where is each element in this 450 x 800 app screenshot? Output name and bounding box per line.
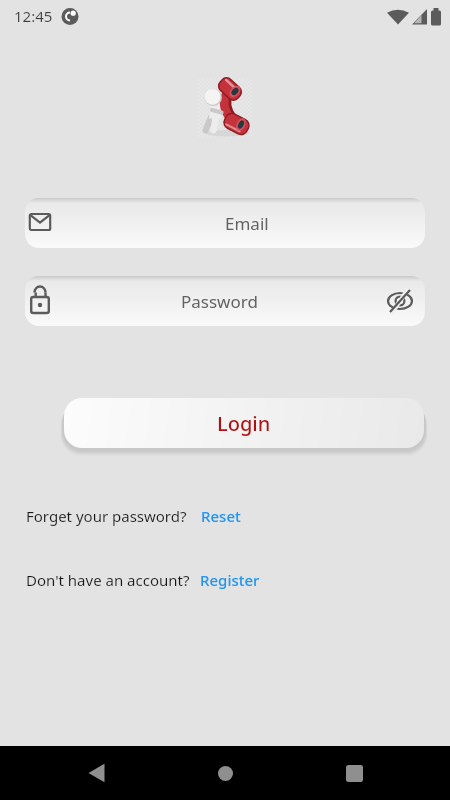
button[interactable] bbox=[328, 746, 380, 800]
button[interactable] bbox=[70, 746, 122, 800]
button[interactable]: Login bbox=[64, 398, 424, 448]
staticText: Forget your password? bbox=[26, 506, 187, 526]
button[interactable]: Register bbox=[200, 570, 260, 590]
staticText: Reset bbox=[201, 506, 241, 526]
button[interactable]: Email bbox=[25, 198, 425, 248]
staticText: 12:45 bbox=[14, 6, 53, 26]
button[interactable] bbox=[375, 276, 425, 326]
button[interactable]: Password bbox=[25, 276, 425, 326]
staticText: Login bbox=[217, 410, 271, 437]
staticText: Password bbox=[181, 290, 258, 313]
staticText: Register bbox=[200, 570, 260, 590]
staticText: Don't have an account? bbox=[26, 570, 190, 590]
button[interactable]: Reset bbox=[201, 506, 241, 526]
button[interactable] bbox=[199, 746, 251, 800]
staticText: Email bbox=[225, 212, 269, 235]
